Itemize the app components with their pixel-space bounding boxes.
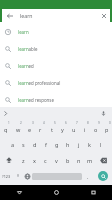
button[interactable]: 8: [79, 120, 90, 136]
button[interactable]: 0: [101, 120, 112, 136]
staticText: j: [78, 141, 80, 148]
staticText: c: [44, 157, 47, 164]
staticText: e: [28, 126, 32, 133]
staticText: learned response: [18, 97, 54, 103]
button[interactable]: x: [29, 152, 40, 168]
button[interactable]: h: [62, 136, 73, 152]
button[interactable]: z: [18, 152, 29, 168]
staticText: s: [22, 141, 25, 148]
button[interactable]: Shift: [0, 152, 18, 168]
button[interactable]: Clear query: [98, 10, 109, 21]
button[interactable]: Recent apps: [75, 185, 112, 200]
staticText: b: [66, 157, 70, 164]
staticText: learnable: [18, 46, 38, 52]
button[interactable]: s: [18, 136, 29, 152]
button[interactable]: Emoji: [13, 168, 23, 184]
staticText: learned: [18, 63, 34, 69]
staticText: u: [72, 126, 76, 133]
staticText: 7: [76, 121, 78, 125]
button[interactable]: learned response: [0, 90, 112, 107]
button[interactable]: Home: [38, 185, 75, 200]
staticText: w: [16, 126, 21, 133]
button[interactable]: 7: [68, 120, 79, 136]
button[interactable]: 2: [12, 120, 24, 136]
button[interactable]: m: [84, 152, 95, 168]
button[interactable]: .: [82, 168, 94, 184]
button[interactable]: learn: [0, 22, 112, 39]
button[interactable]: c: [40, 152, 51, 168]
staticText: learn: [20, 12, 33, 19]
button[interactable]: k: [84, 136, 95, 152]
staticText: 2: [20, 121, 22, 125]
button[interactable]: learnable: [0, 39, 112, 56]
button[interactable]: learned professional: [0, 73, 112, 90]
staticText: p: [105, 126, 109, 133]
staticText: 0: [109, 121, 111, 125]
staticText: f: [45, 141, 47, 148]
button[interactable]: 6: [57, 120, 68, 136]
staticText: ?123: [2, 174, 11, 179]
staticText: x: [33, 157, 36, 164]
staticText: g: [55, 141, 59, 148]
button[interactable]: 1: [0, 120, 12, 136]
staticText: 8: [87, 121, 89, 125]
button[interactable]: g: [51, 136, 62, 152]
button[interactable]: 9: [90, 120, 101, 136]
button[interactable]: 3: [24, 120, 35, 136]
button[interactable]: v: [51, 152, 62, 168]
staticText: 6: [65, 121, 67, 125]
staticText: h: [66, 141, 70, 148]
button[interactable]: Switch language: [23, 168, 32, 184]
staticText: r: [39, 126, 42, 133]
button[interactable]: f: [40, 136, 51, 152]
staticText: m: [87, 157, 93, 164]
button[interactable]: Search: [98, 171, 108, 181]
staticText: i: [84, 126, 86, 133]
staticText: y: [61, 126, 64, 133]
staticText: o: [94, 126, 98, 133]
button[interactable]: Voice input: [98, 108, 109, 119]
staticText: z: [22, 157, 25, 164]
button[interactable]: b: [62, 152, 73, 168]
button[interactable]: Back: [4, 10, 15, 21]
button[interactable]: j: [73, 136, 84, 152]
staticText: a: [11, 141, 15, 148]
staticText: 3: [32, 121, 34, 125]
staticText: l: [100, 141, 102, 148]
staticText: 5: [54, 121, 56, 125]
button[interactable]: d: [29, 136, 40, 152]
button[interactable]: 5: [46, 120, 57, 136]
staticText: v: [55, 157, 58, 164]
button[interactable]: ?123: [0, 168, 13, 184]
staticText: 1: [8, 121, 10, 125]
button[interactable]: More suggestions: [0, 108, 11, 119]
staticText: k: [88, 141, 91, 148]
staticText: 9: [98, 121, 100, 125]
button[interactable]: a: [7, 136, 18, 152]
button[interactable]: 4: [35, 120, 46, 136]
staticText: .: [87, 173, 89, 180]
staticText: d: [33, 141, 37, 148]
button[interactable]: l: [95, 136, 106, 152]
staticText: 4: [43, 121, 45, 125]
staticText: n: [77, 157, 81, 164]
staticText: learn: [18, 29, 29, 35]
staticText: q: [4, 126, 8, 133]
staticText: t: [51, 126, 53, 133]
button[interactable]: Backspace: [95, 152, 112, 168]
button[interactable]: n: [73, 152, 84, 168]
staticText: learned professional: [18, 80, 61, 86]
button[interactable]: Back: [0, 185, 38, 200]
button[interactable]: learned: [0, 56, 112, 73]
